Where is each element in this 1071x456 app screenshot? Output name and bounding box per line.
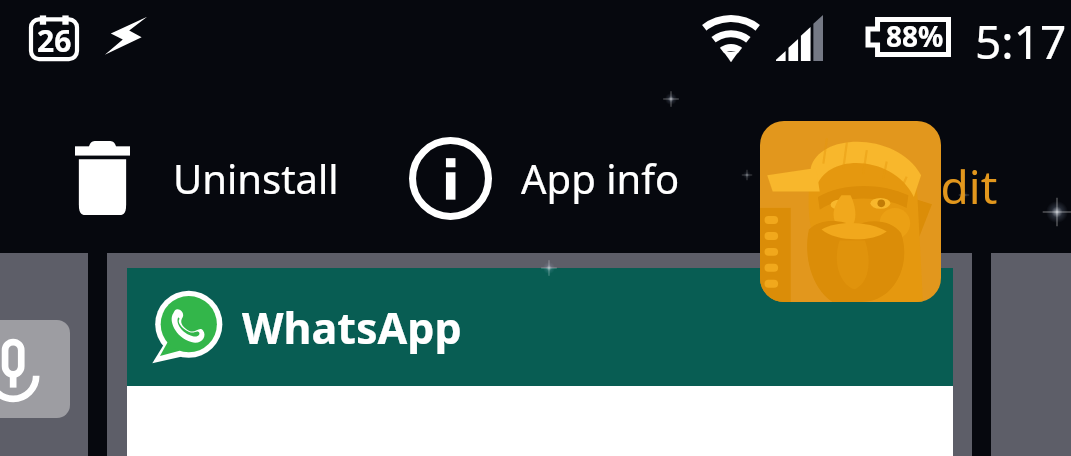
staticText: App info [521,151,680,205]
staticText: 26 [37,20,72,61]
button[interactable]: Voice search [0,320,70,418]
staticText: WhatsApp [242,298,462,357]
staticText: 88% [886,17,944,55]
button[interactable]: App info [409,133,680,223]
button[interactable]: App icon being dragged [760,121,941,302]
button[interactable]: Uninstall [75,133,339,223]
staticText: 5:17 [975,10,1067,73]
button[interactable]: Search widget [0,253,88,456]
button[interactable]: Edit [915,155,998,218]
button[interactable]: WhatsApp widget [107,253,972,456]
staticText: Uninstall [173,151,339,205]
